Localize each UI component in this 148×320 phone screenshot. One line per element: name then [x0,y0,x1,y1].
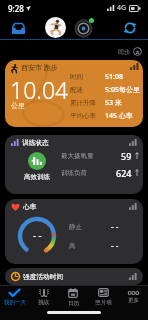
staticText: 时间 [70,73,83,81]
button[interactable]: Sync [120,18,140,38]
staticText: 日历 [68,300,79,307]
staticText: - - [33,229,42,242]
button[interactable]: 更多 [118,286,148,308]
staticText: 照片墙 [95,299,112,306]
staticText: 10.04 [10,74,69,105]
staticText: 51:08 [105,72,123,82]
staticText: 心率 [23,203,37,211]
button[interactable]: 日历 [58,286,88,308]
staticText: 53 米 [105,98,122,108]
staticText: 累计升降 [70,99,96,107]
staticText: 配速 [70,86,83,94]
staticText: 训练状态 [22,139,49,147]
staticText: 高 [69,242,76,250]
staticText: 训练负荷 [61,169,87,177]
button[interactable]: 我的一天 [0,286,29,308]
button[interactable]: Profile [45,17,66,38]
staticText: 9:28 [8,3,24,14]
staticText: 5:05每公里 [105,85,140,95]
staticText: 624 [116,167,132,178]
staticText: 强度活动时间 [23,273,64,281]
staticText: 平均心率 [70,112,96,120]
button[interactable]: 挑战 [29,286,58,308]
button[interactable]: 照片墙 [88,286,118,308]
staticText: 更多 [128,297,139,304]
staticText: 挑战 [38,299,49,306]
staticText: 同步 [118,48,130,56]
staticText: 4G [117,3,127,13]
button[interactable]: 训练状态 [5,135,143,194]
staticText: 静止 [69,223,82,231]
button[interactable]: 强度活动时间 [5,268,143,285]
staticText: 高效训练 [24,173,50,181]
staticText: - - [111,240,119,251]
staticText: 公里 [11,101,25,110]
staticText: 西安市 跑步 [21,63,58,73]
button[interactable]: Watch device [72,17,94,39]
button[interactable]: 心率 [5,199,143,264]
staticText: 最大摄氧量 [61,152,94,160]
staticText: - - [111,221,119,232]
button[interactable]: Upload activity [118,47,142,56]
staticText: 我的一天 [4,299,26,306]
button[interactable]: 西安市 跑步 [5,60,143,127]
staticText: 145 心率 [105,111,133,121]
button[interactable]: Inbox [8,18,28,38]
staticText: 59 [121,150,132,161]
